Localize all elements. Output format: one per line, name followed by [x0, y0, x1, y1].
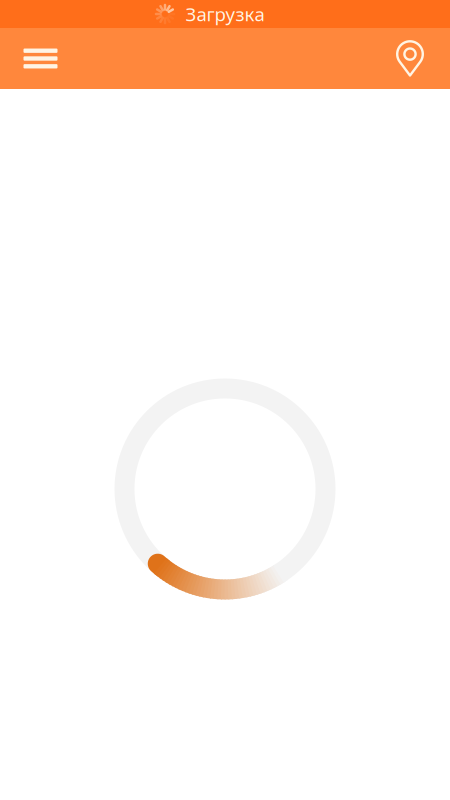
staticText: Загрузка	[185, 2, 264, 26]
button[interactable]: Location	[370, 28, 450, 89]
button[interactable]: Menu	[0, 28, 81, 89]
